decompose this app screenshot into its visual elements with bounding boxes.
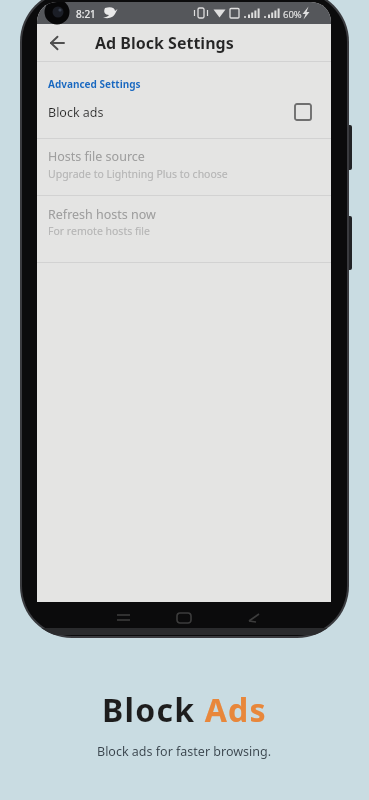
button[interactable] xyxy=(106,606,142,632)
staticText: Advanced Settings xyxy=(48,77,141,91)
staticText: Refresh hosts now xyxy=(48,206,156,223)
staticText: Hosts file source xyxy=(48,148,145,165)
staticText: Block ads xyxy=(48,104,104,121)
staticText: Upgrade to Lightning Plus to choose xyxy=(48,167,228,181)
staticText: 8:21 xyxy=(76,7,96,21)
staticText: 60% xyxy=(283,8,302,21)
button[interactable] xyxy=(37,98,331,137)
button[interactable] xyxy=(37,194,331,260)
staticText: For remote hosts file xyxy=(48,224,150,238)
button[interactable] xyxy=(37,24,79,62)
staticText: Block Ads xyxy=(102,688,267,732)
button[interactable] xyxy=(166,606,202,632)
button[interactable] xyxy=(37,138,331,193)
button[interactable] xyxy=(295,104,311,120)
staticText: Block ads for faster browsing. xyxy=(97,743,272,760)
button[interactable] xyxy=(236,606,272,632)
staticText: Ad Block Settings xyxy=(95,32,234,54)
